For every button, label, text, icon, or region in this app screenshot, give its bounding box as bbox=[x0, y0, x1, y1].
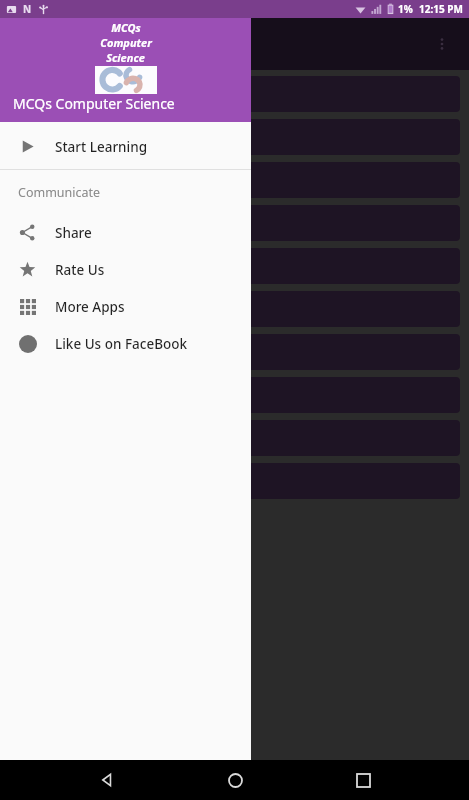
button[interactable]: ALGORITHMS bbox=[9, 420, 460, 456]
staticText: Like Us on FaceBook bbox=[55, 335, 188, 353]
button[interactable]: Start Learning bbox=[0, 128, 251, 165]
button[interactable]: Rate Us bbox=[0, 251, 251, 288]
button[interactable]: PROGRAMMING WITH C bbox=[9, 76, 460, 112]
button[interactable]: COMPUTER ARCHITECTURE bbox=[9, 334, 460, 370]
button[interactable]: Like Us on FaceBook bbox=[0, 325, 251, 362]
staticText: MCQs Computer Science bbox=[13, 94, 175, 113]
staticText: Communicate bbox=[18, 184, 101, 201]
button[interactable]: Home bbox=[213, 760, 257, 800]
staticText: OPERATING SYSTEM bbox=[21, 171, 159, 190]
button[interactable]: More Apps bbox=[0, 288, 251, 325]
staticText: Rate Us bbox=[55, 261, 105, 279]
button[interactable]: More options bbox=[429, 31, 455, 57]
button[interactable]: Recent apps bbox=[341, 760, 385, 800]
button[interactable]: DATA COMMUNICATION bbox=[9, 291, 460, 327]
staticText: Share bbox=[55, 224, 92, 242]
staticText: COMPUTER NETWORKS bbox=[21, 257, 180, 276]
button[interactable]: COMPUTER GRAPHICS bbox=[9, 463, 460, 499]
button[interactable]: SOFTWARE ENGINEERING bbox=[9, 377, 460, 413]
staticText: Computer bbox=[100, 35, 152, 50]
staticText: MCQs bbox=[111, 20, 141, 35]
staticText: DATA COMMUNICATION bbox=[21, 300, 188, 319]
staticText: Science bbox=[106, 50, 145, 65]
staticText: COMPUTER ARCHITECTURE bbox=[21, 343, 207, 362]
staticText: N bbox=[23, 2, 32, 16]
button[interactable]: OPERATING SYSTEM bbox=[9, 162, 460, 198]
button[interactable]: COMPUTER NETWORKS bbox=[9, 248, 460, 284]
staticText: More Apps bbox=[55, 298, 125, 316]
button[interactable]: DATABASE MANAGEMENT bbox=[9, 119, 460, 155]
staticText: PROGRAMMING WITH C bbox=[21, 85, 187, 104]
staticText: DATABASE MANAGEMENT bbox=[21, 128, 197, 147]
staticText: 1% bbox=[398, 2, 413, 16]
button[interactable]: DATA STRUCTURES bbox=[9, 205, 460, 241]
staticText: DATA STRUCTURES bbox=[21, 214, 149, 233]
button[interactable]: Share bbox=[0, 214, 251, 251]
staticText: 12:15 PM bbox=[419, 2, 463, 16]
staticText: Start Learning bbox=[55, 138, 148, 156]
button[interactable]: Back bbox=[84, 760, 128, 800]
